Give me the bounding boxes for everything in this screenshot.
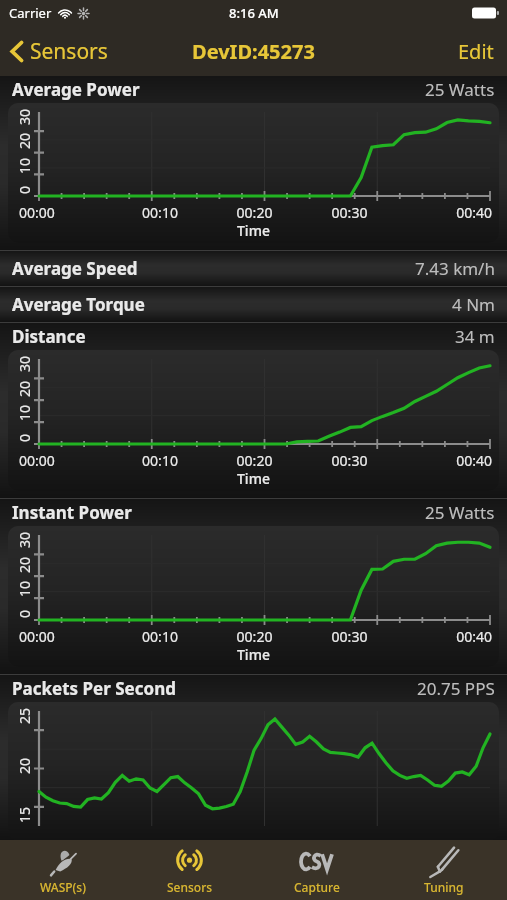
staticText: 00:10 (113, 203, 207, 222)
staticText: DevID:45273 (192, 38, 315, 65)
staticText: 20 (15, 380, 34, 397)
staticText: 15 (15, 806, 34, 823)
staticText: 0 (15, 433, 34, 442)
staticText: Distance (12, 325, 86, 348)
staticText: 00:00 (19, 203, 113, 222)
button[interactable]: Sensors (126, 840, 253, 900)
staticText: Tuning (424, 879, 464, 895)
staticText: 25 Watts (425, 78, 495, 101)
staticText: 30 (15, 108, 34, 125)
staticText: 30 (15, 355, 34, 372)
button[interactable]: Capture (253, 840, 380, 900)
staticText: 10 (15, 404, 34, 421)
button[interactable]: Instant Power (0, 499, 507, 674)
staticText: Average Power (12, 78, 140, 101)
staticText: Packets Per Second (12, 677, 176, 700)
staticText: 00:20 (207, 451, 302, 470)
staticText: 10 (15, 580, 34, 597)
staticText: Sensors (30, 37, 108, 66)
staticText: 20 (15, 132, 34, 149)
staticText: 00:30 (302, 627, 397, 646)
staticText: 8:16 AM (229, 4, 279, 22)
staticText: 20 (15, 556, 34, 573)
staticText: Instant Power (12, 501, 132, 524)
staticText: 0 (15, 609, 34, 618)
staticText: Time (237, 645, 270, 664)
staticText: Average Torque (12, 293, 145, 316)
button[interactable]: WASP(s) (0, 840, 126, 900)
staticText: 00:40 (397, 451, 492, 470)
button[interactable]: Distance (0, 323, 507, 498)
staticText: Average Speed (12, 257, 138, 280)
staticText: 10 (15, 157, 34, 174)
staticText: Capture (294, 879, 340, 895)
button[interactable]: Average Speed (0, 251, 507, 286)
staticText: 34 m (455, 325, 495, 348)
staticText: Edit (458, 38, 494, 65)
staticText: 7.43 km/h (415, 257, 495, 280)
button[interactable]: Edit (445, 29, 507, 74)
staticText: Time (237, 221, 270, 240)
staticText: 00:20 (207, 627, 302, 646)
staticText: 00:00 (19, 627, 113, 646)
staticText: WASP(s) (40, 879, 86, 895)
staticText: 00:10 (113, 451, 207, 470)
button[interactable]: Tuning (380, 840, 507, 900)
staticText: Time (237, 469, 270, 488)
staticText: 20 (15, 757, 34, 774)
staticText: 00:40 (397, 627, 492, 646)
staticText: 00:30 (302, 203, 397, 222)
button[interactable]: Packets Per Second (0, 675, 507, 840)
staticText: Sensors (167, 879, 213, 895)
staticText: 00:20 (207, 203, 302, 222)
staticText: 00:30 (302, 451, 397, 470)
staticText: 0 (15, 185, 34, 194)
button[interactable]: Sensors (0, 29, 120, 74)
staticText: 4 Nm (452, 293, 495, 316)
staticText: 00:40 (397, 203, 492, 222)
staticText: 25 (15, 707, 34, 724)
staticText: 20.75 PPS (417, 677, 495, 700)
staticText: 00:10 (113, 627, 207, 646)
button[interactable]: Average Torque (0, 287, 507, 322)
staticText: 25 Watts (425, 501, 495, 524)
button[interactable]: Average Power (0, 76, 507, 250)
staticText: Carrier (9, 4, 52, 22)
staticText: 00:00 (19, 451, 113, 470)
staticText: 30 (15, 531, 34, 548)
